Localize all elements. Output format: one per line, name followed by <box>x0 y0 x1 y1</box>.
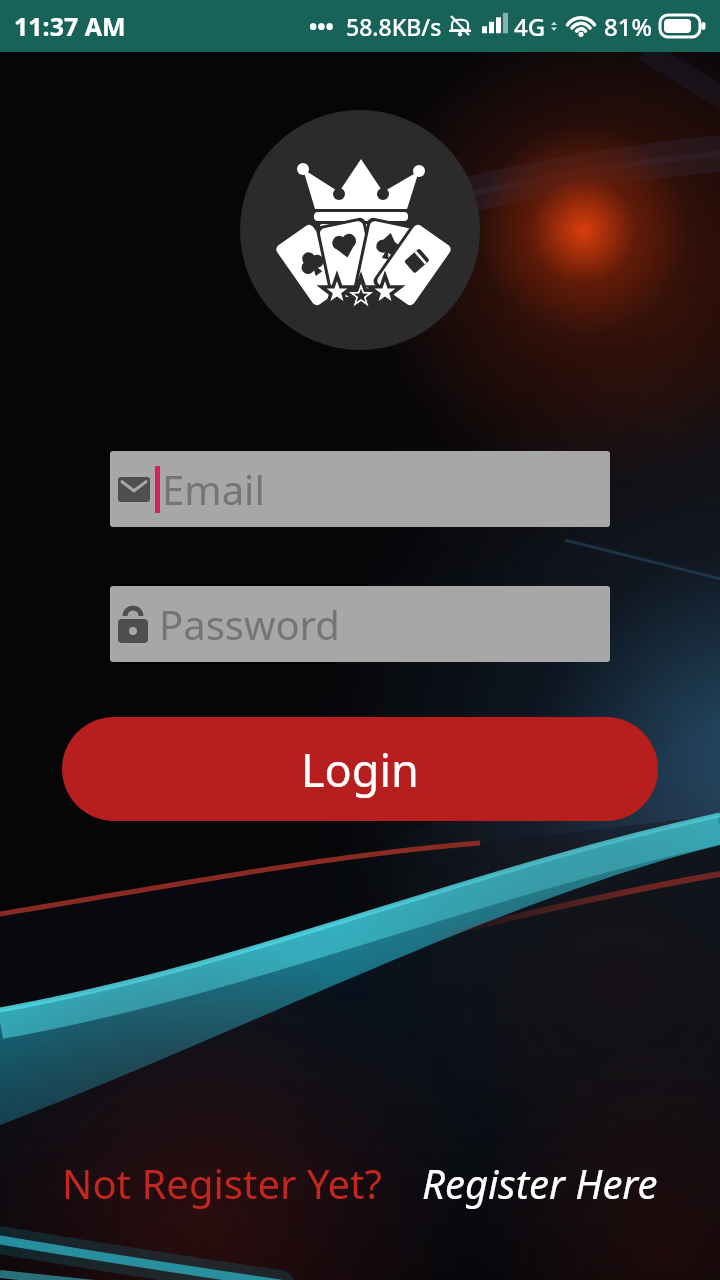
button[interactable]: Register Here <box>422 1156 658 1210</box>
staticText: ••• <box>309 11 334 41</box>
staticText: 4G <box>514 10 546 43</box>
staticText: Not Register Yet? <box>62 1156 382 1210</box>
staticText: Password <box>159 597 340 651</box>
button[interactable]: Password <box>110 586 610 662</box>
staticText: Login <box>301 739 419 800</box>
button[interactable]: Login <box>62 717 658 821</box>
staticText: Email <box>162 462 265 516</box>
staticText: 11:37 AM <box>14 9 126 43</box>
button[interactable]: Email <box>110 451 610 527</box>
staticText: 81% <box>604 10 652 43</box>
staticText: Register Here <box>422 1156 658 1210</box>
staticText: 58.8KB/s <box>346 11 442 42</box>
button[interactable]: Not Register Yet? <box>62 1156 382 1210</box>
